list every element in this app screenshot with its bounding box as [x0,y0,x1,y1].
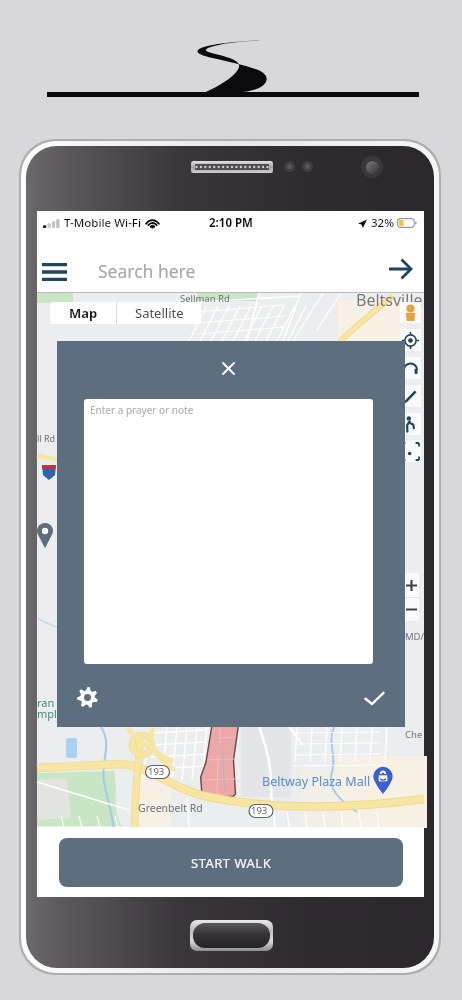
staticText: Enter a prayer or note [90,403,194,417]
button[interactable]: Zoom in [404,573,419,597]
button[interactable]: Save [358,682,390,714]
button[interactable]: Map [50,302,116,324]
button: Close [57,341,405,727]
button[interactable]: Search [382,251,418,287]
button[interactable]: Satellite [117,302,201,324]
button[interactable]: Map control [400,329,421,351]
button[interactable]: Zoom out [404,597,419,621]
button[interactable]: Map control [400,413,421,435]
staticText: mplex [37,706,69,721]
staticText: Chе [405,728,423,741]
staticText: Beltsville [356,289,423,311]
button[interactable]: Map control [400,385,421,407]
staticText: Sellman Rd [180,292,230,305]
button[interactable]: Map control [400,302,421,323]
staticText: Beltway Plaza Mall [262,773,371,790]
staticText: MD/ [405,630,425,643]
staticText: Greenbelt Rd [138,801,203,815]
staticText: ran [37,695,55,710]
staticText: 193 [148,765,165,778]
button[interactable]: START WALK [59,838,403,887]
staticText: Search here [98,259,196,283]
staticText: START WALK [191,854,272,872]
staticText: Map [69,304,98,322]
staticText: T-Mobile Wi-Fi [64,215,142,231]
staticText: Satellite [135,304,184,322]
button[interactable]: Close [213,353,244,384]
staticText: 32% [371,215,394,231]
button[interactable]: Enter a prayer or note [84,399,373,664]
staticText: 2:10 PM [209,215,253,231]
staticText: ll Rd [37,432,56,444]
button[interactable]: Menu [32,254,76,290]
staticText: 193 [251,804,268,817]
button[interactable]: Map control [400,440,421,462]
button[interactable]: Map control [400,357,421,379]
button[interactable]: Settings [71,681,103,713]
